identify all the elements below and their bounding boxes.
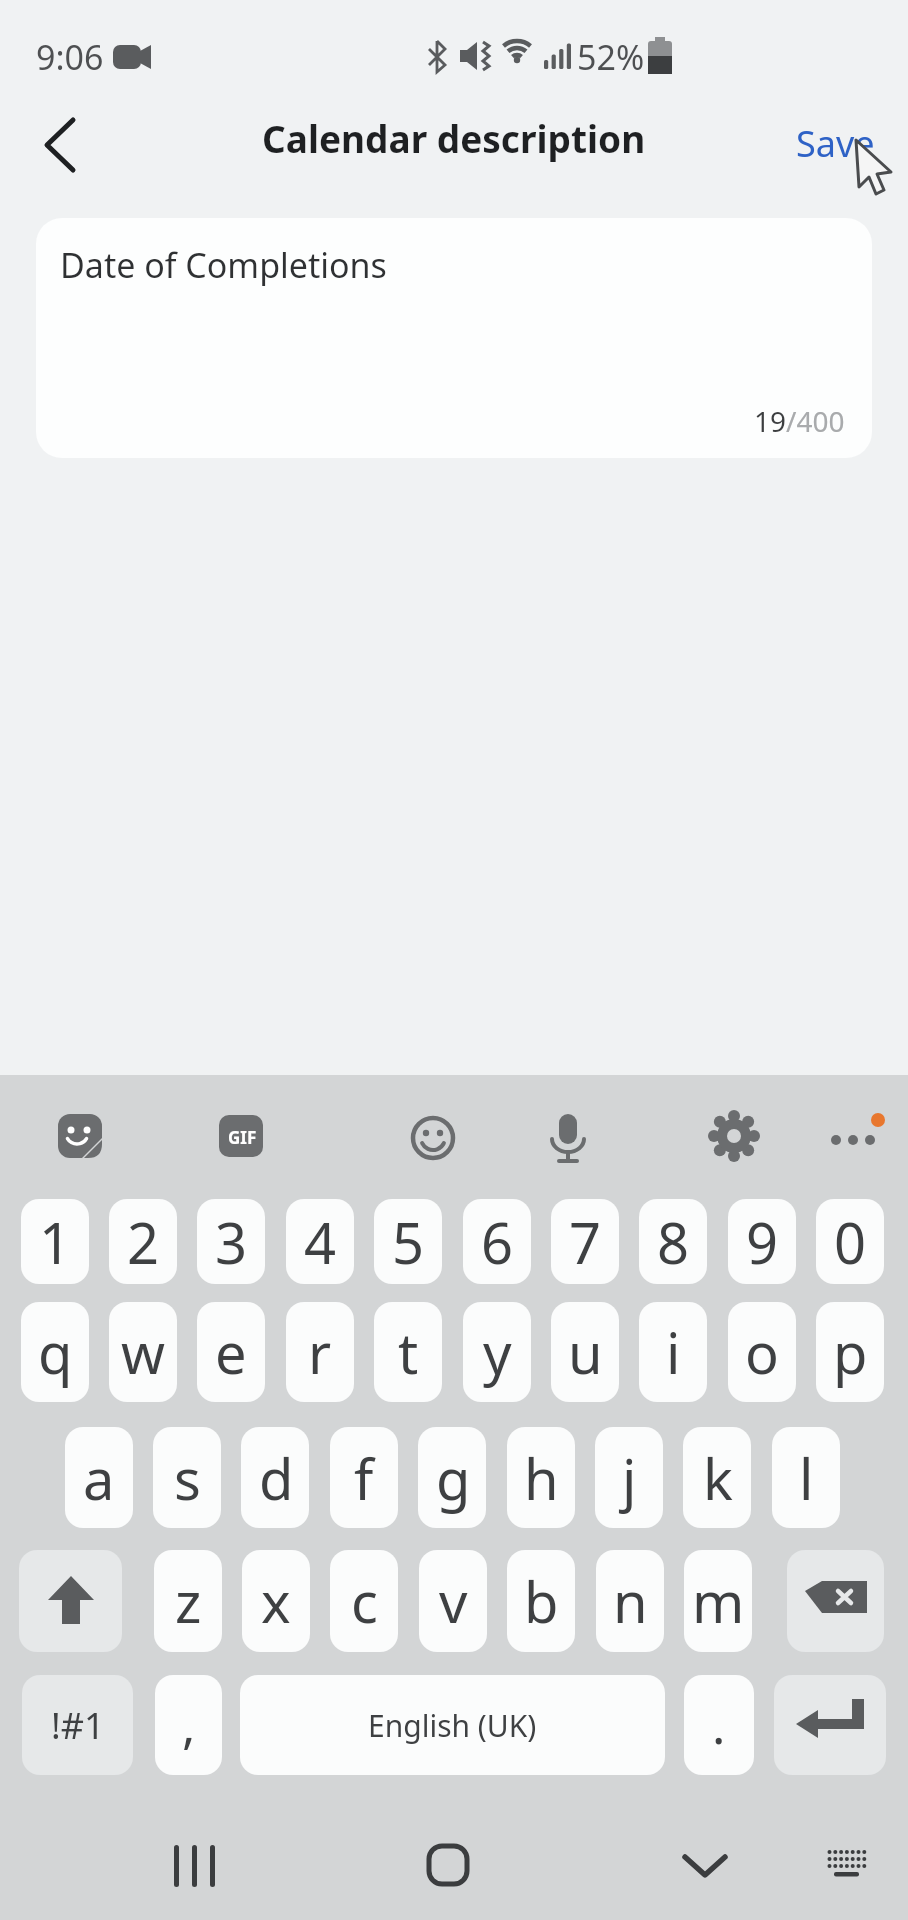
button[interactable] xyxy=(536,1104,600,1172)
button[interactable]: b xyxy=(507,1550,575,1652)
button[interactable] xyxy=(816,1104,888,1168)
button[interactable]: English (UK) xyxy=(240,1675,665,1775)
button[interactable]: y xyxy=(463,1302,531,1402)
staticText: 0 xyxy=(834,1204,867,1280)
button[interactable]: x xyxy=(242,1550,310,1652)
button[interactable]: q xyxy=(21,1302,89,1402)
button[interactable] xyxy=(49,1105,113,1169)
button[interactable] xyxy=(702,1104,766,1168)
button[interactable]: p xyxy=(816,1302,884,1402)
staticText: w xyxy=(121,1314,166,1390)
button[interactable] xyxy=(413,1830,483,1900)
staticText: e xyxy=(215,1314,247,1390)
staticText: c xyxy=(351,1563,378,1639)
button[interactable]: 9 xyxy=(728,1199,796,1284)
staticText: r xyxy=(308,1314,332,1390)
staticText: 52% xyxy=(577,34,645,80)
button[interactable] xyxy=(401,1106,465,1170)
button[interactable]: 0 xyxy=(816,1199,884,1284)
button[interactable] xyxy=(330,1427,398,1528)
button[interactable]: GIF xyxy=(210,1105,274,1169)
staticText: z xyxy=(175,1563,202,1639)
button[interactable]: z xyxy=(154,1550,222,1652)
staticText: 8 xyxy=(657,1204,690,1280)
button[interactable]: u xyxy=(551,1302,619,1402)
staticText: 19/400 xyxy=(754,402,845,440)
staticText: v xyxy=(439,1563,468,1639)
button[interactable]: 8 xyxy=(639,1199,707,1284)
button[interactable]: i xyxy=(639,1302,707,1402)
button[interactable]: 5 xyxy=(374,1199,442,1284)
button[interactable] xyxy=(683,1427,751,1528)
button[interactable]: n xyxy=(596,1550,664,1652)
staticText: 1 xyxy=(39,1204,72,1280)
button[interactable]: . xyxy=(684,1675,754,1775)
button[interactable]: 7 xyxy=(551,1199,619,1284)
button[interactable]: Save xyxy=(780,110,890,176)
button[interactable]: 2 xyxy=(109,1199,177,1284)
button[interactable]: 1 xyxy=(21,1199,89,1284)
staticText: g xyxy=(436,1440,471,1516)
staticText: x xyxy=(261,1563,291,1639)
button[interactable]: 3 xyxy=(197,1199,265,1284)
staticText: k xyxy=(703,1440,733,1516)
staticText: j xyxy=(622,1440,637,1516)
staticText: b xyxy=(524,1563,559,1639)
button[interactable] xyxy=(241,1427,309,1528)
button[interactable] xyxy=(418,1427,486,1528)
staticText: i xyxy=(666,1314,681,1390)
staticText: Date of Completions xyxy=(60,242,387,288)
staticText: 4 xyxy=(304,1204,337,1280)
button[interactable]: o xyxy=(728,1302,796,1402)
staticText: t xyxy=(398,1314,419,1390)
button[interactable] xyxy=(812,1831,882,1901)
staticText: 5 xyxy=(392,1204,425,1280)
staticText: q xyxy=(38,1314,73,1390)
staticText: . xyxy=(712,1691,726,1759)
staticText: 6 xyxy=(481,1204,514,1280)
button[interactable]: m xyxy=(684,1550,752,1652)
staticText: d xyxy=(259,1440,294,1516)
button[interactable]: 6 xyxy=(463,1199,531,1284)
staticText: 7 xyxy=(569,1204,602,1280)
staticText: English (UK) xyxy=(368,1705,537,1746)
button[interactable] xyxy=(160,1831,230,1901)
button[interactable]: w xyxy=(109,1302,177,1402)
staticText: !#1 xyxy=(51,1701,105,1750)
staticText: y xyxy=(483,1314,512,1390)
button[interactable]: e xyxy=(197,1302,265,1402)
button[interactable] xyxy=(19,1550,122,1652)
button[interactable]: 4 xyxy=(286,1199,354,1284)
staticText: 2 xyxy=(127,1204,160,1280)
staticText: Calendar description xyxy=(262,113,646,163)
staticText: h xyxy=(524,1440,559,1516)
staticText: s xyxy=(174,1440,201,1516)
button[interactable]: , xyxy=(155,1675,222,1775)
button[interactable]: r xyxy=(286,1302,354,1402)
staticText: f xyxy=(354,1440,374,1516)
staticText: 9:06 xyxy=(36,34,104,80)
staticText: n xyxy=(613,1563,648,1639)
button[interactable]: !#1 xyxy=(22,1675,133,1775)
staticText: m xyxy=(692,1563,745,1639)
staticText: Save xyxy=(796,119,875,168)
button[interactable] xyxy=(507,1427,575,1528)
staticText: 9 xyxy=(746,1204,779,1280)
button[interactable]: t xyxy=(374,1302,442,1402)
button[interactable] xyxy=(787,1550,884,1652)
button[interactable]: c xyxy=(330,1550,398,1652)
button[interactable] xyxy=(26,110,96,180)
staticText: , xyxy=(182,1691,196,1759)
button[interactable]: v xyxy=(419,1550,487,1652)
button[interactable] xyxy=(772,1427,840,1528)
staticText: 3 xyxy=(215,1204,248,1280)
button[interactable] xyxy=(153,1427,221,1528)
button[interactable] xyxy=(595,1427,663,1528)
button[interactable] xyxy=(774,1675,886,1775)
staticText: GIF xyxy=(228,1126,257,1149)
staticText: p xyxy=(833,1314,868,1390)
button[interactable]: Date of Completions xyxy=(36,218,872,458)
button[interactable] xyxy=(670,1831,740,1901)
staticText: l xyxy=(799,1440,814,1516)
button[interactable] xyxy=(65,1427,133,1528)
